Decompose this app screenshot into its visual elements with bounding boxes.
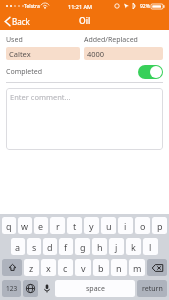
staticText: Back bbox=[12, 16, 30, 27]
button[interactable]: z bbox=[24, 259, 39, 276]
staticText: t bbox=[73, 220, 77, 232]
button[interactable]: c bbox=[58, 259, 73, 276]
button[interactable]: y bbox=[84, 217, 99, 234]
staticText: v bbox=[81, 262, 86, 274]
staticText: 92% bbox=[140, 3, 150, 10]
staticText: Oil bbox=[79, 15, 91, 27]
staticText: q bbox=[6, 220, 12, 232]
button[interactable]: g bbox=[75, 238, 90, 255]
button[interactable]: 4000 bbox=[84, 47, 163, 60]
button[interactable]: o bbox=[135, 217, 150, 234]
button[interactable]: r bbox=[50, 217, 65, 234]
staticText: n bbox=[116, 262, 122, 274]
staticText: h bbox=[97, 241, 103, 253]
button[interactable]: n bbox=[111, 259, 127, 276]
staticText: o bbox=[140, 220, 146, 232]
button[interactable]: return bbox=[137, 280, 167, 297]
staticText: i bbox=[124, 220, 127, 232]
button[interactable]: e bbox=[34, 217, 48, 234]
button[interactable]: m bbox=[129, 259, 145, 276]
button[interactable]: a bbox=[11, 238, 25, 255]
staticText: j bbox=[115, 241, 118, 253]
button[interactable]: s bbox=[27, 238, 41, 255]
staticText: c bbox=[63, 262, 68, 274]
button[interactable]: Back bbox=[0, 13, 36, 30]
staticText: Completed bbox=[6, 67, 43, 77]
button[interactable]: w bbox=[18, 217, 32, 234]
button[interactable]: Enter comment... bbox=[6, 88, 163, 150]
button[interactable]: 123 bbox=[2, 280, 21, 297]
staticText: f bbox=[64, 241, 68, 253]
button[interactable]: Backspace bbox=[147, 259, 167, 276]
button[interactable]: Caltex bbox=[6, 47, 80, 60]
staticText: d bbox=[47, 241, 53, 253]
button[interactable]: space bbox=[55, 280, 135, 297]
staticText: y bbox=[89, 220, 94, 232]
staticText: return bbox=[142, 284, 163, 294]
staticText: l bbox=[149, 241, 152, 253]
button[interactable]: f bbox=[59, 238, 73, 255]
staticText: 4000 bbox=[87, 49, 105, 59]
staticText: u bbox=[106, 220, 112, 232]
button[interactable]: d bbox=[43, 238, 57, 255]
button[interactable]: Shift bbox=[2, 259, 22, 276]
button[interactable]: t bbox=[67, 217, 82, 234]
staticText: Telstra bbox=[24, 3, 40, 10]
button[interactable]: k bbox=[126, 238, 141, 255]
staticText: s bbox=[32, 241, 37, 253]
staticText: b bbox=[98, 262, 104, 274]
staticText: Added/Replaced bbox=[84, 35, 138, 45]
button[interactable]: u bbox=[101, 217, 116, 234]
staticText: Used bbox=[6, 35, 23, 45]
staticText: w bbox=[21, 220, 29, 232]
staticText: e bbox=[38, 220, 44, 232]
button[interactable]: Dictate bbox=[40, 280, 53, 297]
staticText: p bbox=[157, 220, 163, 232]
staticText: Enter comment... bbox=[10, 92, 71, 102]
staticText: g bbox=[80, 241, 86, 253]
button[interactable]: q bbox=[2, 217, 16, 234]
staticText: space bbox=[86, 284, 105, 294]
staticText: a bbox=[15, 241, 21, 253]
button[interactable]: p bbox=[152, 217, 167, 234]
button[interactable]: i bbox=[118, 217, 133, 234]
staticText: m bbox=[133, 262, 142, 274]
staticText: z bbox=[29, 262, 34, 274]
button[interactable]: Change keyboard bbox=[23, 280, 38, 297]
button[interactable]: x bbox=[41, 259, 56, 276]
staticText: x bbox=[46, 262, 51, 274]
staticText: 123 bbox=[6, 284, 18, 293]
button[interactable]: Completed bbox=[6, 65, 163, 79]
staticText: Caltex bbox=[9, 49, 31, 59]
button[interactable]: b bbox=[93, 259, 109, 276]
staticText: r bbox=[56, 220, 60, 232]
staticText: k bbox=[131, 241, 136, 253]
staticText: 11:21 AM bbox=[68, 3, 93, 10]
button[interactable]: v bbox=[75, 259, 91, 276]
button[interactable]: l bbox=[143, 238, 158, 255]
button[interactable]: h bbox=[92, 238, 107, 255]
button[interactable]: j bbox=[109, 238, 124, 255]
